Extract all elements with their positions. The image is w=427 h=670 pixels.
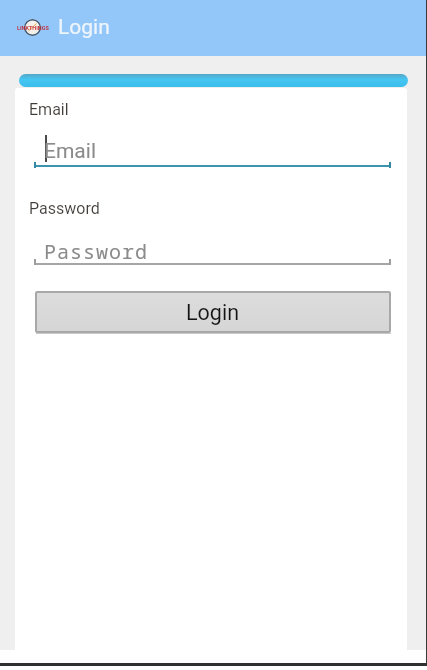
button[interactable]: Login [35, 291, 391, 333]
staticText: Email [44, 139, 96, 164]
staticText: Password [29, 199, 100, 218]
staticText: Password [44, 238, 148, 265]
staticText: Login [186, 300, 240, 325]
staticText: Email [29, 100, 69, 119]
button[interactable]: Email [34, 130, 391, 167]
button[interactable]: Password [34, 228, 391, 265]
staticText: Login [58, 15, 110, 40]
staticText: LINKTHINGS [17, 25, 49, 31]
